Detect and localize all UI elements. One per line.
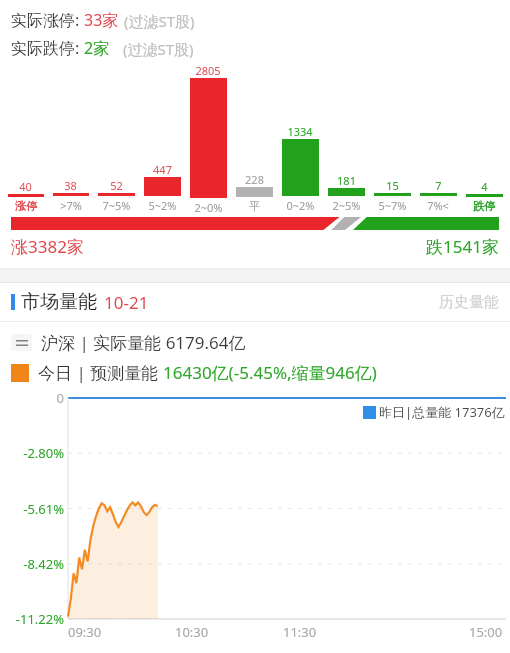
staticText: 0~2% <box>286 198 315 213</box>
staticText: 447 <box>153 162 172 177</box>
staticText: 10-21 <box>104 291 149 314</box>
button[interactable]: 4 <box>461 63 507 213</box>
staticText: -5.61% <box>3 500 64 518</box>
button[interactable]: 2805 <box>185 63 231 213</box>
staticText: 16430亿(-5.45%,缩量946亿) <box>163 361 377 384</box>
staticText: 跌停 <box>473 199 495 213</box>
staticText: 涨停 <box>15 199 37 213</box>
staticText: 实际跌停: <box>11 37 84 59</box>
staticText: 11:30 <box>283 623 317 641</box>
button[interactable]: 今日 | 预测量能 <box>11 361 377 384</box>
staticText: 7 <box>435 178 442 193</box>
staticText: 实际涨停: <box>11 9 84 31</box>
staticText: (过滤ST股) <box>124 11 195 31</box>
button[interactable]: 228 <box>231 63 277 213</box>
staticText: 5~7% <box>378 198 407 213</box>
staticText: 10:30 <box>175 623 209 641</box>
button[interactable]: 15 <box>369 63 415 213</box>
staticText: 1334 <box>287 124 313 139</box>
staticText: 15 <box>386 178 399 193</box>
staticText: 2~5% <box>332 198 361 213</box>
staticText: 228 <box>245 172 264 187</box>
staticText: 38 <box>64 178 77 193</box>
button[interactable]: 52 <box>93 63 139 213</box>
staticText: 2805 <box>195 63 221 78</box>
staticText: 昨日|总量能 17376亿 <box>379 403 505 421</box>
button[interactable]: 7 <box>415 63 461 213</box>
staticText: 2~0% <box>194 200 223 213</box>
staticText: 52 <box>110 178 123 193</box>
button[interactable]: 市场量能 <box>0 283 510 321</box>
button[interactable]: 1334 <box>277 63 323 213</box>
staticText: 历史量能 <box>439 293 499 312</box>
staticText: 沪深 | 实际量能 6179.64亿 <box>41 331 246 354</box>
staticText: 平 <box>249 199 260 213</box>
staticText: 0 <box>3 389 64 407</box>
staticText: 涨3382家 <box>11 235 84 258</box>
staticText: >7% <box>60 198 82 213</box>
staticText: 33家 <box>84 9 119 31</box>
staticText: -8.42% <box>3 555 64 573</box>
staticText: -2.80% <box>3 444 64 462</box>
staticText: (过滤ST股) <box>123 39 194 59</box>
button[interactable]: 40 <box>3 63 48 213</box>
other: 切换市场 <box>11 334 32 351</box>
button[interactable]: 181 <box>323 63 369 213</box>
staticText: -11.22% <box>3 610 64 628</box>
button[interactable]: 447 <box>139 63 185 213</box>
staticText: 7~5% <box>102 198 131 213</box>
staticText: 40 <box>19 179 32 194</box>
staticText: 2家 <box>84 37 110 59</box>
staticText: 181 <box>337 173 356 188</box>
staticText: 今日 | 预测量能 <box>38 361 163 384</box>
staticText: 15:00 <box>469 623 503 641</box>
staticText: 4 <box>481 179 488 194</box>
button[interactable]: 38 <box>48 63 93 213</box>
staticText: 跌1541家 <box>426 235 499 258</box>
staticText: 市场量能 <box>21 290 97 314</box>
button[interactable]: 切换市场 <box>11 331 246 354</box>
staticText: 5~2% <box>148 198 177 213</box>
button[interactable]: 涨跌比例 <box>11 217 499 230</box>
staticText: 7%< <box>427 198 449 213</box>
staticText: 09:30 <box>68 623 102 641</box>
button[interactable]: 昨日|总量能 17376亿 <box>363 403 505 421</box>
